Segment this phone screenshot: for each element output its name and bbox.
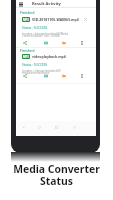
- button[interactable]: Remove item: [83, 17, 88, 22]
- staticText: Status: [40, 174, 73, 188]
- staticText: MP3: [23, 55, 29, 59]
- staticText: mediaconverter/audio: [22, 71, 50, 75]
- button[interactable]: Play: [43, 40, 49, 46]
- staticText: Media Converter: [13, 162, 100, 176]
- staticText: MP3: [23, 18, 29, 22]
- staticText: Status : SUCCESS: [22, 63, 48, 67]
- button[interactable]: Open folder: [61, 73, 67, 79]
- staticText: Result Activity: [32, 1, 61, 6]
- button[interactable]: Back: [20, 124, 26, 130]
- button[interactable]: More options: [79, 73, 85, 79]
- staticText: Finished: [20, 48, 35, 53]
- staticText: videoplayback.mp4: [32, 54, 66, 59]
- button[interactable]: Open navigation menu: [17, 0, 25, 8]
- staticText: Finished: [20, 10, 35, 15]
- button[interactable]: More options: [79, 40, 85, 46]
- button[interactable]: Home: [36, 124, 42, 130]
- button[interactable]: Open folder: [61, 40, 67, 46]
- button[interactable]: Recent apps: [53, 124, 59, 130]
- button[interactable]: Screenshot: [71, 124, 77, 130]
- staticText: Location : /storage/emulated/0/Media: [22, 32, 69, 36]
- button[interactable]: Share: [22, 73, 28, 79]
- staticText: Location : /storage/emulated/0/: [22, 69, 61, 73]
- staticText: Status : SUCCESS: [22, 26, 48, 30]
- button[interactable]: Share: [22, 40, 28, 46]
- staticText: Converter/Audio Size : 3.4 MB: [22, 34, 60, 38]
- button[interactable]: Play: [43, 73, 49, 79]
- staticText: VID-20181105-WA0065.mp4: [32, 17, 79, 22]
